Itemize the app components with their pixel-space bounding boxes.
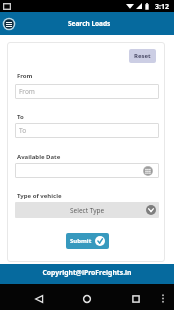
other: Pick date: [143, 166, 153, 176]
staticText: From: [17, 72, 33, 80]
button[interactable]: To: [15, 123, 159, 138]
button[interactable]: Home: [77, 289, 96, 308]
button[interactable]: Reset: [129, 49, 156, 63]
button[interactable]: From: [15, 84, 159, 99]
button[interactable]: More options: [156, 289, 169, 308]
staticText: Type of vehicle: [17, 192, 62, 200]
button[interactable]: Open navigation menu: [0, 15, 18, 33]
staticText: Select Type: [70, 206, 105, 215]
staticText: Search Loads: [68, 19, 111, 28]
button[interactable]: Select Type: [15, 202, 159, 218]
staticText: To: [17, 113, 24, 121]
button[interactable]: Pick date: [15, 163, 159, 178]
staticText: Copyright@iProFreights.in: [42, 268, 132, 277]
staticText: 3:12: [155, 2, 169, 12]
button[interactable]: Submit: [66, 233, 109, 249]
button[interactable]: Back: [29, 289, 48, 308]
button[interactable]: Recent apps: [126, 289, 145, 308]
staticText: To: [19, 126, 27, 135]
staticText: Available Date: [17, 153, 61, 161]
staticText: Submit: [70, 237, 92, 245]
staticText: From: [19, 87, 35, 96]
other: Expand vehicle type list: [146, 205, 156, 215]
staticText: Reset: [134, 52, 151, 60]
